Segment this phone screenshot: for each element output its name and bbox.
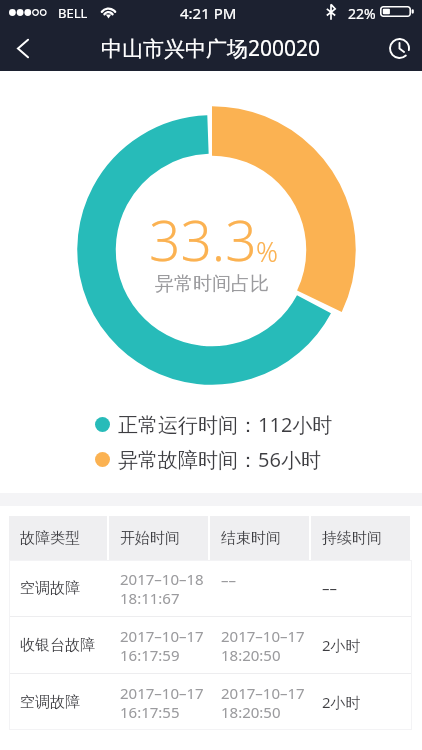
staticText: 2小时 (322, 635, 361, 655)
button[interactable]: 空调故障 (9, 560, 412, 616)
staticText: 异常时间占比 (155, 272, 269, 296)
staticText: 正常运行时间：112小时 (118, 411, 333, 438)
staticText: 2小时 (322, 692, 361, 712)
staticText: 2017–10–17 16:17:59 (120, 626, 204, 665)
staticText: 2017–10–17 16:17:55 (120, 683, 204, 722)
button[interactable]: History (376, 26, 422, 71)
staticText: % (256, 233, 278, 270)
staticText: –– (322, 578, 338, 598)
staticText: 中山市兴中广场200020 (101, 34, 321, 63)
staticText: 33.3 (149, 202, 257, 277)
staticText: 故障类型 (20, 529, 80, 548)
button[interactable]: 空调故障 (9, 674, 412, 730)
staticText: 持续时间 (322, 529, 382, 548)
staticText: 异常故障时间：56小时 (118, 446, 321, 473)
staticText: –– (221, 570, 237, 590)
staticText: 空调故障 (20, 579, 80, 598)
staticText: 2017–10–17 18:20:50 (221, 683, 305, 722)
button[interactable]: 收银台故障 (9, 617, 412, 673)
staticText: 结束时间 (221, 529, 281, 548)
staticText: 22% (348, 4, 376, 23)
staticText: 2017–10–18 18:11:67 (120, 569, 204, 608)
button[interactable]: Back (0, 26, 46, 71)
staticText: BELL (58, 4, 88, 22)
staticText: 4:21 PM (180, 3, 237, 23)
staticText: 开始时间 (120, 529, 180, 548)
staticText: 空调故障 (20, 693, 80, 712)
staticText: 2017–10–17 18:20:50 (221, 626, 305, 665)
staticText: 收银台故障 (20, 636, 95, 655)
